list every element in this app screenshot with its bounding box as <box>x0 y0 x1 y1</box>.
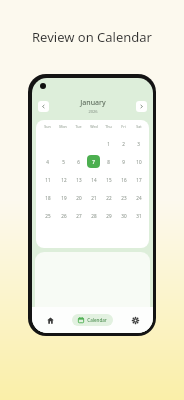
button[interactable]: Next month <box>136 101 147 112</box>
button[interactable]: 16 <box>117 173 130 186</box>
button[interactable]: 21 <box>87 191 100 204</box>
staticText: 26 <box>61 213 67 219</box>
staticText: 25 <box>45 213 51 219</box>
button[interactable]: Previous month <box>38 101 49 112</box>
button[interactable]: 10 <box>132 155 145 168</box>
button[interactable]: Home <box>41 311 59 329</box>
button[interactable]: 29 <box>102 209 115 222</box>
button[interactable]: 7 <box>87 155 100 168</box>
staticText: 3 <box>137 141 140 147</box>
staticText: Fri <box>121 124 126 129</box>
staticText: 19 <box>61 195 67 201</box>
staticText: 8 <box>107 159 110 165</box>
button[interactable]: 11 <box>41 173 54 186</box>
staticText: 28 <box>91 213 97 219</box>
staticText: Review on Calendar <box>32 28 152 46</box>
button[interactable]: Calendar <box>72 314 113 326</box>
staticText: 1 <box>107 141 110 147</box>
staticText: 15 <box>106 177 112 183</box>
button[interactable]: 3 <box>132 137 145 150</box>
staticText: Sat <box>136 124 142 129</box>
staticText: 6 <box>77 159 80 165</box>
staticText: 10 <box>136 159 142 165</box>
staticText: 31 <box>136 213 142 219</box>
button[interactable]: 13 <box>72 173 85 186</box>
staticText: 12 <box>61 177 67 183</box>
staticText: Mon <box>59 124 67 129</box>
button[interactable]: 27 <box>72 209 85 222</box>
button[interactable]: 14 <box>87 173 100 186</box>
button[interactable]: 6 <box>72 155 85 168</box>
button[interactable]: 23 <box>117 191 130 204</box>
staticText: 2 <box>122 141 125 147</box>
button[interactable]: 18 <box>41 191 54 204</box>
staticText: Calendar <box>87 317 107 323</box>
staticText: Thu <box>105 124 112 129</box>
staticText: 7 <box>92 159 95 165</box>
staticText: 11 <box>45 177 51 183</box>
button[interactable]: 22 <box>102 191 115 204</box>
button[interactable]: 9 <box>117 155 130 168</box>
button[interactable]: 12 <box>57 173 70 186</box>
staticText: 22 <box>106 195 112 201</box>
staticText: 23 <box>121 195 127 201</box>
staticText: January <box>80 98 106 108</box>
staticText: 18 <box>45 195 51 201</box>
button[interactable]: 19 <box>57 191 70 204</box>
staticText: Tue <box>75 124 82 129</box>
staticText: 24 <box>136 195 142 201</box>
staticText: 14 <box>91 177 97 183</box>
staticText: 21 <box>91 195 97 201</box>
staticText: Sun <box>44 124 51 129</box>
button[interactable]: 17 <box>132 173 145 186</box>
staticText: 5 <box>62 159 65 165</box>
staticText: 27 <box>76 213 82 219</box>
button[interactable]: 25 <box>41 209 54 222</box>
staticText: Wed <box>90 124 98 129</box>
staticText: 16 <box>121 177 127 183</box>
staticText: 29 <box>106 213 112 219</box>
staticText: 9 <box>122 159 125 165</box>
staticText: 2026 <box>88 109 98 114</box>
button[interactable]: 28 <box>87 209 100 222</box>
button[interactable]: 2 <box>117 137 130 150</box>
staticText: 20 <box>76 195 82 201</box>
button[interactable]: 4 <box>41 155 54 168</box>
button[interactable]: 31 <box>132 209 145 222</box>
button[interactable]: 20 <box>72 191 85 204</box>
button[interactable]: Settings <box>126 311 144 329</box>
button[interactable]: 5 <box>57 155 70 168</box>
button[interactable]: 24 <box>132 191 145 204</box>
staticText: 13 <box>76 177 82 183</box>
button[interactable]: 30 <box>117 209 130 222</box>
button[interactable]: 26 <box>57 209 70 222</box>
staticText: 17 <box>136 177 142 183</box>
button[interactable]: 8 <box>102 155 115 168</box>
button[interactable]: 15 <box>102 173 115 186</box>
button[interactable]: 1 <box>102 137 115 150</box>
staticText: 30 <box>121 213 127 219</box>
staticText: 4 <box>46 159 49 165</box>
